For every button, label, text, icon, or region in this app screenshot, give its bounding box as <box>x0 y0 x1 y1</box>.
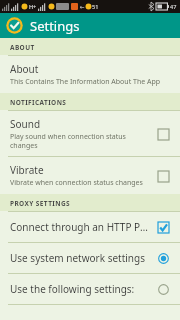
button[interactable]: Vibrate <box>0 157 180 194</box>
staticText: 47 <box>170 3 177 10</box>
other: Selected option <box>158 253 169 264</box>
button[interactable]: Connect through an HTTP Pro.. <box>0 212 180 242</box>
button[interactable]: Use system network settings <box>0 243 180 273</box>
button[interactable]: Unchecked checkbox <box>154 167 172 185</box>
staticText: 51 <box>92 3 99 10</box>
staticText: ← <box>80 4 85 10</box>
button[interactable]: Unchecked checkbox <box>154 125 172 143</box>
button[interactable]: Use the following settings: <box>0 274 180 304</box>
other: Unchecked checkbox <box>158 129 169 140</box>
staticText: Vibrate when connection status changes <box>10 178 143 188</box>
staticText: This Contains The Information About The … <box>10 77 161 87</box>
other: Unselected option <box>158 284 169 295</box>
staticText: Vibrate <box>10 163 44 177</box>
staticText: H+ <box>29 3 37 10</box>
button[interactable]: Sound <box>0 111 180 156</box>
button[interactable]: Selected option <box>154 249 172 267</box>
button[interactable]: Checked checkbox <box>154 218 172 236</box>
button[interactable]: Unselected option <box>154 280 172 298</box>
staticText: Connect through an HTTP Pro.. <box>10 220 148 234</box>
staticText: Settings <box>30 17 80 35</box>
button[interactable]: About <box>0 56 180 93</box>
staticText: Play sound when connection status change… <box>10 132 148 150</box>
staticText: ABOUT <box>10 43 35 52</box>
staticText: NOTIFICATIONS <box>10 98 67 107</box>
other: Unchecked checkbox <box>158 171 169 182</box>
other: Checked checkbox <box>158 222 169 233</box>
staticText: About <box>10 62 39 76</box>
staticText: Use system network settings <box>10 251 145 265</box>
staticText: Sound <box>10 117 41 131</box>
other: App icon <box>6 17 23 34</box>
staticText: Use the following settings: <box>10 282 135 296</box>
staticText: PROXY SETTINGS <box>10 199 70 208</box>
